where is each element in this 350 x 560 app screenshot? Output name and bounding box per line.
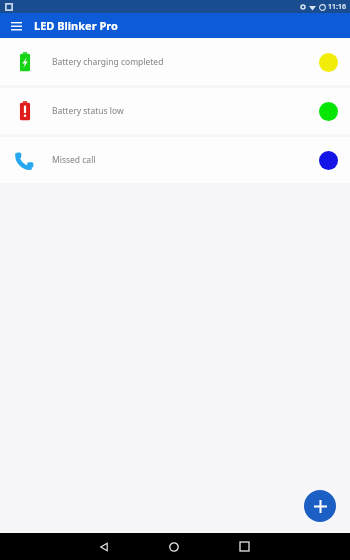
staticText: LED Blinker Pro — [34, 18, 118, 33]
button[interactable]: Battery status low — [0, 88, 350, 134]
staticText: 11:16 — [328, 2, 346, 12]
button[interactable]: Battery charging completed — [0, 39, 350, 85]
button[interactable]: Back — [90, 533, 118, 560]
button[interactable]: Missed call — [0, 137, 350, 183]
button[interactable]: Home — [160, 533, 188, 560]
staticText: Missed call — [52, 154, 319, 166]
button[interactable]: Recent apps — [230, 533, 258, 560]
button[interactable]: Add — [304, 490, 336, 522]
staticText: Battery charging completed — [52, 56, 319, 68]
button[interactable]: Open navigation drawer — [6, 16, 26, 36]
staticText: Battery status low — [52, 105, 319, 117]
